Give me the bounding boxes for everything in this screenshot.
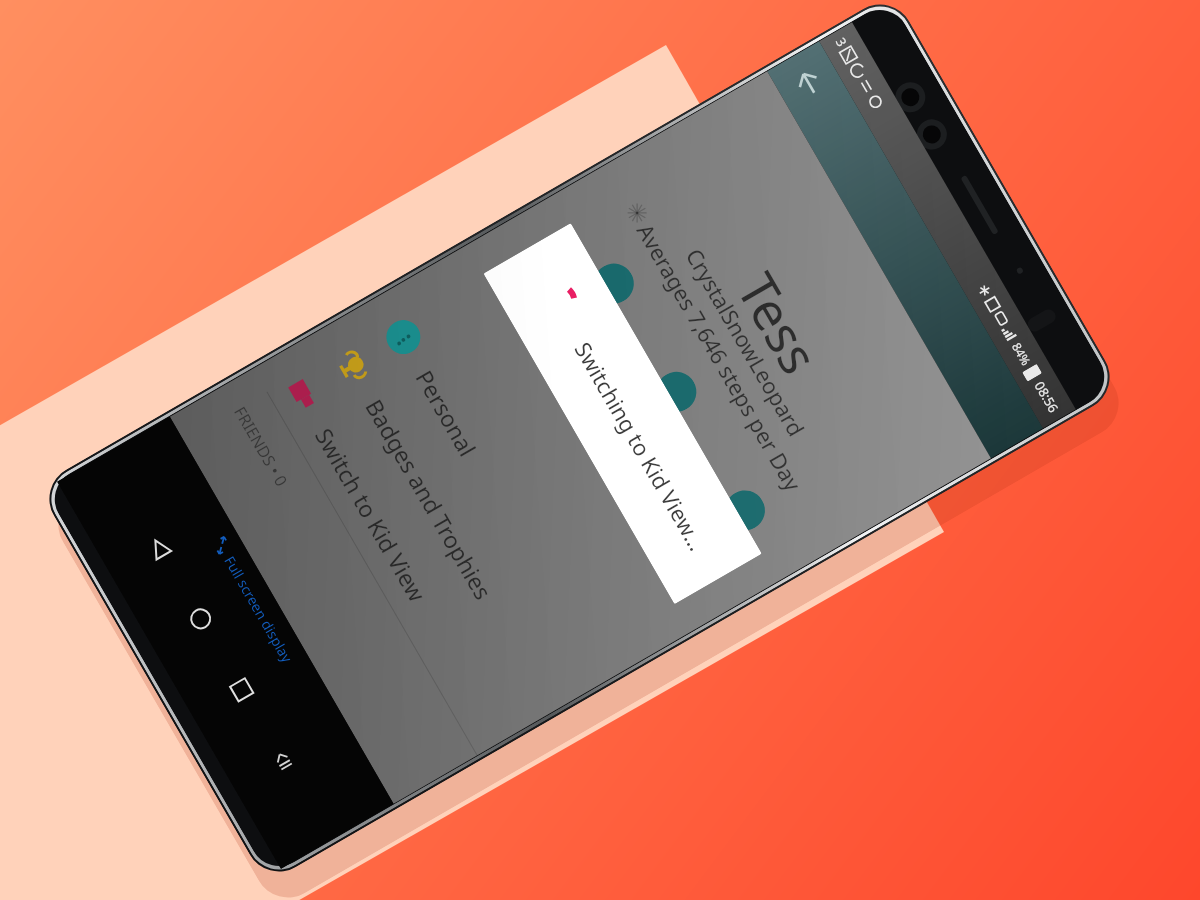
staticText: 3 [832, 34, 851, 50]
staticText: 84% [1009, 339, 1035, 368]
staticText: FRIENDS • 0 [229, 402, 293, 491]
staticText: Switching to Kid View... [569, 336, 713, 556]
button[interactable]: Recents [212, 659, 272, 719]
staticText: Tess [636, 111, 922, 534]
staticText: CrystalSnowLeopard [621, 141, 871, 543]
button[interactable]: Badge 2 [649, 364, 704, 419]
button[interactable]: Switch to Kid View [254, 339, 528, 755]
button[interactable]: Badge 1 [586, 256, 641, 311]
staticText: Personal [409, 364, 484, 462]
button[interactable]: Back [130, 517, 190, 577]
button[interactable]: Personal [354, 281, 628, 697]
button[interactable]: Hide navigation bar [256, 734, 311, 788]
staticText: Full screen display [220, 552, 297, 666]
button[interactable]: Badges and Trophies [304, 310, 578, 726]
staticText: Averages 7,646 steps per Day [595, 156, 845, 558]
button[interactable]: Full screen display [210, 534, 297, 666]
button[interactable]: Back [780, 54, 837, 112]
button[interactable]: Home [171, 588, 231, 648]
staticText: 08:56 [1030, 378, 1063, 416]
staticText: Badges and Trophies [359, 393, 500, 605]
button[interactable]: Badge 3 [718, 483, 772, 538]
staticText: Switch to Kid View [309, 422, 433, 607]
